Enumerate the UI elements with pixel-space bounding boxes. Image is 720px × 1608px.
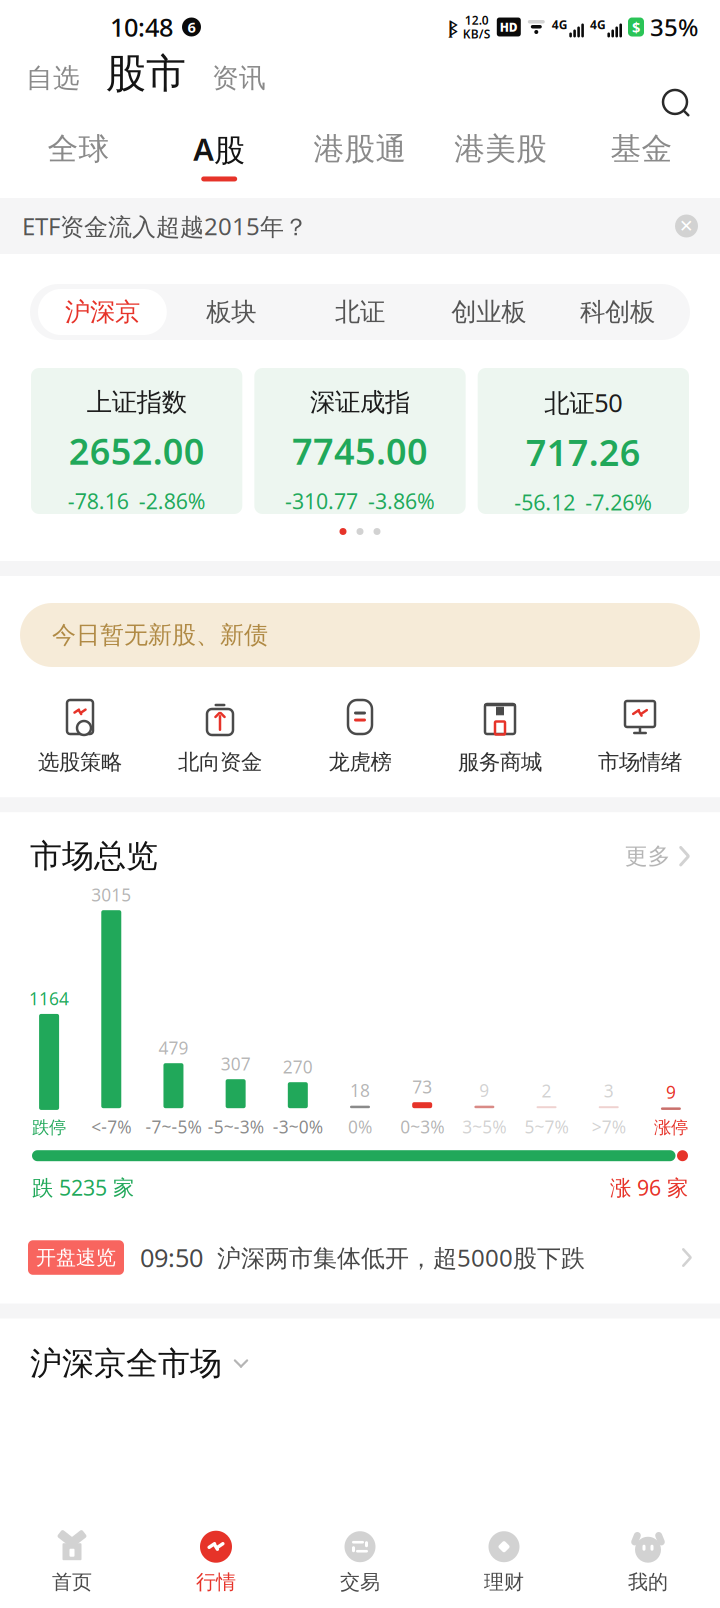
- staticText: KB/S: [463, 26, 491, 42]
- staticText: 沪深京: [65, 296, 140, 327]
- staticText: 全球: [47, 130, 109, 168]
- staticText: 2: [541, 1079, 551, 1102]
- staticText: ETF资金流入超越2015年？: [22, 210, 308, 242]
- staticText: 7745.00: [292, 427, 428, 475]
- staticText: HD: [500, 19, 518, 35]
- staticText: 4G: [552, 16, 568, 32]
- staticText: 09:50: [140, 1241, 203, 1274]
- staticText: 自选: [26, 62, 80, 94]
- button[interactable]: 北证50: [478, 368, 689, 514]
- button[interactable]: 沪深京全市场: [0, 1332, 720, 1394]
- staticText: 股市: [106, 49, 186, 98]
- button[interactable]: 北证: [296, 289, 424, 335]
- staticText: 板块: [206, 296, 256, 327]
- button[interactable]: 市场情绪: [570, 697, 710, 775]
- staticText: 港股通: [313, 130, 406, 168]
- staticText: >7%: [592, 1115, 626, 1138]
- staticText: 交易: [340, 1570, 380, 1594]
- staticText: -7.26%: [585, 488, 652, 516]
- staticText: 科创板: [580, 296, 655, 327]
- button[interactable]: 行情: [144, 1516, 288, 1608]
- staticText: 创业板: [451, 296, 526, 327]
- staticText: -56.12: [514, 488, 575, 516]
- staticText: 市场情绪: [598, 749, 682, 775]
- staticText: 479: [158, 1036, 188, 1059]
- staticText: 5~7%: [524, 1115, 568, 1138]
- staticText: 我的: [628, 1570, 668, 1594]
- staticText: 4G: [590, 16, 606, 32]
- staticText: $: [632, 17, 640, 37]
- staticText: -7~-5%: [145, 1115, 201, 1138]
- staticText: 服务商城: [458, 749, 542, 775]
- staticText: -78.16: [68, 487, 129, 515]
- staticText: 307: [221, 1052, 251, 1075]
- staticText: 0%: [348, 1115, 372, 1138]
- button[interactable]: 龙虎榜: [290, 697, 430, 775]
- staticText: 717.26: [526, 428, 641, 476]
- staticText: 北证50: [544, 386, 622, 419]
- staticText: 1164: [29, 987, 69, 1010]
- staticText: 跌 5235 家: [32, 1173, 134, 1201]
- staticText: 港美股: [454, 130, 547, 168]
- button[interactable]: 北向资金: [150, 697, 290, 775]
- staticText: 深证成指: [310, 387, 410, 418]
- staticText: <-7%: [91, 1115, 131, 1138]
- staticText: -310.77: [285, 487, 358, 515]
- button[interactable]: 自选: [26, 62, 80, 94]
- staticText: -3.86%: [368, 487, 435, 515]
- button[interactable]: ETF资金流入超越2015年？: [0, 198, 720, 254]
- button[interactable]: 板块: [167, 289, 296, 335]
- button[interactable]: 今日暂无新股、新债: [20, 603, 700, 667]
- staticText: 9: [666, 1080, 676, 1103]
- staticText: A股: [193, 129, 245, 169]
- button[interactable]: 服务商城: [430, 697, 570, 775]
- staticText: ✕: [679, 216, 694, 236]
- staticText: 行情: [196, 1570, 236, 1594]
- staticText: 龙虎榜: [328, 749, 391, 775]
- button[interactable]: 开盘速览: [0, 1217, 720, 1297]
- button[interactable]: 深证成指: [254, 368, 466, 514]
- staticText: 今日暂无新股、新债: [52, 620, 268, 650]
- button[interactable]: 沪深京: [38, 289, 167, 335]
- staticText: 10:48: [110, 10, 173, 44]
- staticText: 3: [604, 1079, 614, 1102]
- button[interactable]: 全球: [8, 126, 149, 184]
- button[interactable]: 选股策略: [10, 697, 150, 775]
- staticText: 北证: [335, 296, 385, 327]
- staticText: 6: [187, 17, 195, 37]
- button[interactable]: 基金: [571, 126, 712, 184]
- staticText: 跌停: [32, 1117, 66, 1138]
- staticText: 3~5%: [462, 1115, 506, 1138]
- staticText: 3015: [91, 883, 131, 906]
- staticText: 基金: [611, 130, 673, 168]
- button[interactable]: 创业板: [424, 289, 553, 335]
- staticText: 资讯: [212, 62, 266, 94]
- button[interactable]: 股市: [106, 49, 186, 98]
- button[interactable]: 科创板: [553, 289, 682, 335]
- staticText: 选股策略: [38, 749, 122, 775]
- staticText: ᛒ: [448, 15, 457, 39]
- button[interactable]: 理财: [432, 1516, 576, 1608]
- staticText: -5~-3%: [208, 1115, 264, 1138]
- button[interactable]: 资讯: [212, 62, 266, 94]
- staticText: 市场总览: [30, 837, 158, 876]
- staticText: 沪深两市集体低开，超5000股下跌: [217, 1242, 585, 1273]
- button[interactable]: 港美股: [430, 126, 571, 184]
- staticText: 2652.00: [69, 427, 205, 475]
- button[interactable]: 港股通: [290, 126, 430, 184]
- button[interactable]: 市场总览: [0, 824, 720, 888]
- button[interactable]: 交易: [288, 1516, 432, 1608]
- staticText: 北向资金: [178, 749, 262, 775]
- button[interactable]: 我的: [576, 1516, 720, 1608]
- staticText: 270: [283, 1055, 313, 1078]
- button[interactable]: 搜索: [660, 87, 694, 121]
- button[interactable]: 上证指数: [31, 368, 242, 514]
- button[interactable]: A股: [149, 126, 290, 184]
- staticText: -3~0%: [273, 1115, 323, 1138]
- staticText: 更多: [625, 842, 671, 870]
- staticText: 首页: [52, 1570, 92, 1594]
- staticText: 73: [412, 1075, 432, 1098]
- staticText: 涨停: [654, 1117, 688, 1138]
- button[interactable]: 首页: [0, 1516, 144, 1608]
- staticText: 35%: [650, 11, 698, 43]
